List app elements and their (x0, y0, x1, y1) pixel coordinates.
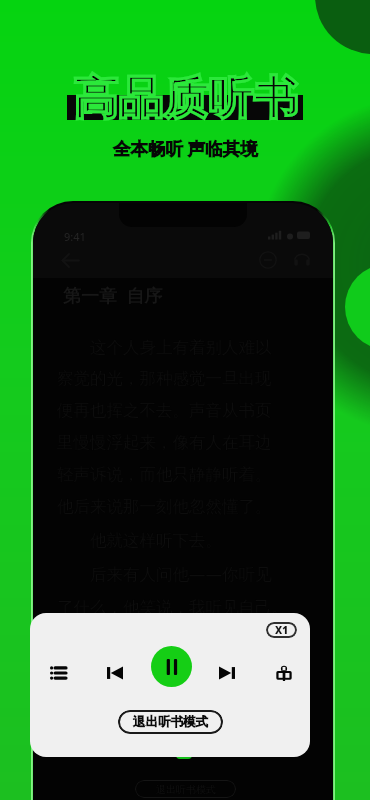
staticText: 全本畅听 声临其境 (113, 136, 258, 160)
button[interactable]: Previous (93, 651, 137, 695)
button[interactable]: Reading mode (262, 651, 306, 695)
button[interactable]: 退出听书模式 (118, 710, 223, 734)
button[interactable]: Next (205, 651, 249, 695)
staticText: 退出听书模式 (133, 714, 208, 730)
staticText: 了什么，他笑说，我听见自己。 (57, 597, 288, 618)
staticText: 高品质听书 (73, 71, 298, 126)
button[interactable]: Chapter list (36, 651, 80, 695)
staticText: 第一章 自序 (63, 283, 163, 308)
button[interactable]: Pause (142, 644, 200, 688)
button[interactable]: 退出听书模式 (135, 780, 236, 798)
staticText: 9:41 (64, 229, 86, 244)
button[interactable]: X1 (266, 622, 297, 638)
staticText: 退出听书模式 (156, 783, 216, 796)
staticText: 高品质听书 (73, 71, 298, 126)
staticText: X1 (275, 623, 289, 637)
